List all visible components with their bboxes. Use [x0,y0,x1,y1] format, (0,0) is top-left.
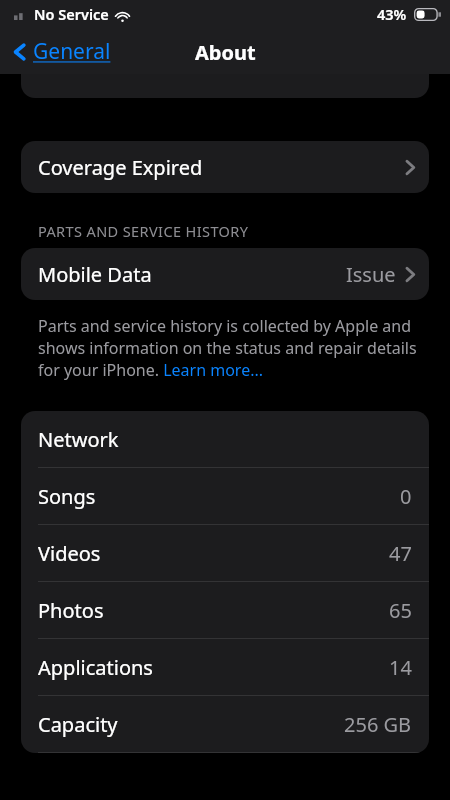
button[interactable]: Mobile Data [21,248,429,300]
staticText: 256 GB [344,711,412,738]
other: Open details [405,265,416,284]
staticText: General [33,37,111,66]
button[interactable]: Capacity [21,696,429,753]
staticText: About [195,39,256,66]
button[interactable]: Photos [21,582,429,639]
staticText: PARTS AND SERVICE HISTORY [38,221,249,241]
staticText: Network [38,426,119,453]
button[interactable]: Applications [21,639,429,696]
staticText: No Service [34,4,109,24]
button[interactable]: Coverage Expired [21,141,429,193]
staticText: Parts and service history is collected b… [38,315,423,381]
staticText: 14 [389,654,412,681]
other: Open details [405,158,416,177]
staticText: Mobile Data [38,261,152,288]
staticText: Photos [38,597,104,624]
staticText: 43% [377,4,407,24]
staticText: Videos [38,540,101,567]
staticText: Applications [38,654,153,681]
staticText: Issue [346,261,396,288]
button[interactable]: Parts and service history is collected b… [38,315,423,381]
button[interactable]: Songs [21,468,429,525]
staticText: 0 [400,483,412,510]
button[interactable]: General [8,33,115,70]
staticText: Capacity [38,711,118,738]
staticText: 65 [389,597,412,624]
button[interactable]: Network [21,411,429,468]
staticText: Coverage Expired [38,154,203,181]
staticText: Songs [38,483,96,510]
button[interactable]: Videos [21,525,429,582]
staticText: 47 [389,540,412,567]
